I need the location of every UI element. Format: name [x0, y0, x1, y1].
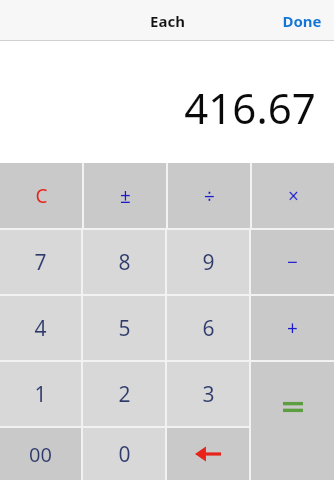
staticText: 2 — [118, 380, 131, 409]
staticText: ± — [120, 183, 131, 209]
button[interactable]: 0 — [83, 428, 165, 480]
button[interactable]: 4 — [0, 296, 81, 360]
button[interactable]: − — [251, 230, 334, 294]
staticText: Done — [282, 11, 322, 31]
button[interactable]: Done — [270, 3, 334, 39]
button[interactable]: + — [251, 296, 334, 360]
staticText: 4 — [34, 314, 47, 343]
button[interactable]: Equals — [251, 362, 334, 480]
button[interactable]: 00 — [0, 428, 81, 480]
staticText: 5 — [118, 314, 131, 343]
staticText: − — [287, 249, 298, 275]
staticText: 1 — [34, 380, 47, 409]
button[interactable]: 1 — [0, 362, 81, 426]
staticText: 0 — [118, 440, 131, 469]
staticText: 8 — [118, 248, 131, 277]
button[interactable]: C — [0, 163, 82, 228]
staticText: C — [35, 183, 48, 209]
button[interactable]: 9 — [167, 230, 249, 294]
staticText: 6 — [202, 314, 215, 343]
staticText: 416.67 — [184, 79, 316, 136]
staticText: ÷ — [204, 183, 215, 209]
staticText: × — [288, 183, 299, 209]
staticText: 3 — [202, 380, 215, 409]
button[interactable]: Backspace — [167, 428, 249, 480]
button[interactable]: 5 — [83, 296, 165, 360]
staticText: Each — [150, 11, 185, 31]
staticText: 7 — [34, 248, 47, 277]
staticText: 00 — [29, 441, 52, 468]
button[interactable]: 3 — [167, 362, 249, 426]
button[interactable]: 8 — [83, 230, 165, 294]
button[interactable]: ± — [84, 163, 166, 228]
button[interactable]: ÷ — [168, 163, 250, 228]
button[interactable]: × — [252, 163, 334, 228]
button[interactable]: 2 — [83, 362, 165, 426]
button[interactable]: 7 — [0, 230, 81, 294]
staticText: 9 — [202, 248, 215, 277]
button[interactable]: 6 — [167, 296, 249, 360]
staticText: + — [287, 315, 298, 341]
